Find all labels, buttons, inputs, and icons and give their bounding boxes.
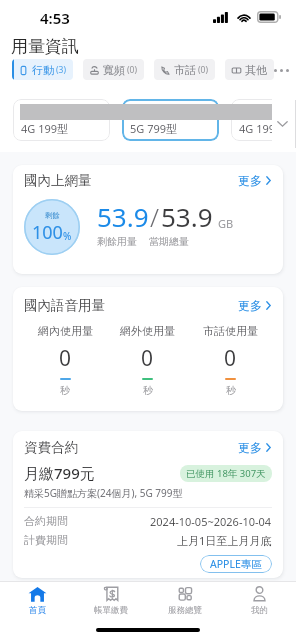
button[interactable]: 市話: [154, 59, 215, 80]
button[interactable]: 服務總覽: [148, 582, 222, 619]
staticText: 4G 199型: [21, 121, 69, 136]
staticText: 我的: [251, 605, 268, 616]
staticText: 更多: [238, 298, 262, 313]
button[interactable]: 更多: [237, 171, 272, 190]
button[interactable]: More options: [274, 60, 289, 80]
staticText: (0): [127, 64, 137, 76]
staticText: 當期總量: [149, 235, 189, 248]
button[interactable]: 寬頻: [83, 59, 144, 80]
staticText: 0: [141, 344, 154, 373]
button[interactable]: 首頁: [0, 582, 74, 619]
staticText: 0: [224, 344, 237, 373]
button[interactable]: 帳單繳費: [74, 582, 148, 619]
staticText: 帳單繳費: [94, 605, 128, 616]
staticText: 更多: [238, 440, 262, 455]
staticText: 秒: [60, 384, 70, 397]
staticText: 行動: [32, 63, 54, 77]
staticText: 秒: [226, 384, 236, 397]
staticText: GB: [218, 216, 234, 231]
button[interactable]: 更多: [237, 296, 272, 315]
staticText: 市話: [174, 63, 196, 77]
button[interactable]: 4G 199型: [231, 99, 296, 141]
staticText: 用量資訊: [11, 36, 79, 57]
button[interactable]: 4G 199型: [13, 99, 110, 141]
staticText: 網外使用量: [120, 324, 175, 338]
staticText: 秒: [143, 384, 153, 397]
staticText: 剩餘用量: [97, 235, 137, 248]
staticText: 已使用 18年 307天: [186, 467, 266, 480]
staticText: 國內語音用量: [24, 297, 105, 314]
staticText: 4:53: [40, 8, 70, 28]
staticText: %: [63, 229, 72, 243]
staticText: 0: [59, 344, 72, 373]
staticText: 精采5G贈點方案(24個月), 5G 799型: [24, 486, 183, 500]
staticText: 計費期間: [24, 533, 68, 547]
button[interactable]: 5G 799型: [122, 99, 219, 141]
staticText: 資費合約: [24, 439, 78, 456]
staticText: 合約期間: [24, 514, 68, 528]
staticText: (3): [56, 64, 66, 76]
staticText: 2024-10-05~2026-10-04: [150, 514, 272, 529]
button[interactable]: APPLE專區: [200, 555, 272, 573]
staticText: 首頁: [29, 605, 46, 616]
staticText: 4G 199型: [239, 121, 287, 136]
staticText: 市話使用量: [203, 324, 258, 338]
staticText: 剩餘: [45, 211, 60, 220]
button[interactable]: 我的: [222, 582, 296, 619]
staticText: 更多: [238, 173, 262, 188]
staticText: APPLE專區: [210, 557, 262, 571]
staticText: 100: [32, 220, 63, 245]
button[interactable]: 其他: [225, 59, 274, 80]
staticText: 國內上網量: [24, 172, 92, 189]
staticText: 其他: [245, 63, 267, 77]
staticText: 網內使用量: [38, 324, 93, 338]
staticText: 53.9: [97, 199, 149, 234]
staticText: 上月1日至上月月底: [177, 533, 272, 548]
staticText: 5G 799型: [130, 121, 178, 136]
staticText: 月繳799元: [24, 463, 95, 483]
staticText: /: [150, 199, 160, 234]
button[interactable]: 更多: [237, 438, 272, 457]
staticText: (0): [198, 64, 208, 76]
staticText: 53.9: [161, 199, 213, 234]
staticText: 服務總覽: [168, 605, 202, 616]
staticText: 寬頻: [103, 63, 125, 77]
button[interactable]: 行動: [12, 59, 73, 80]
